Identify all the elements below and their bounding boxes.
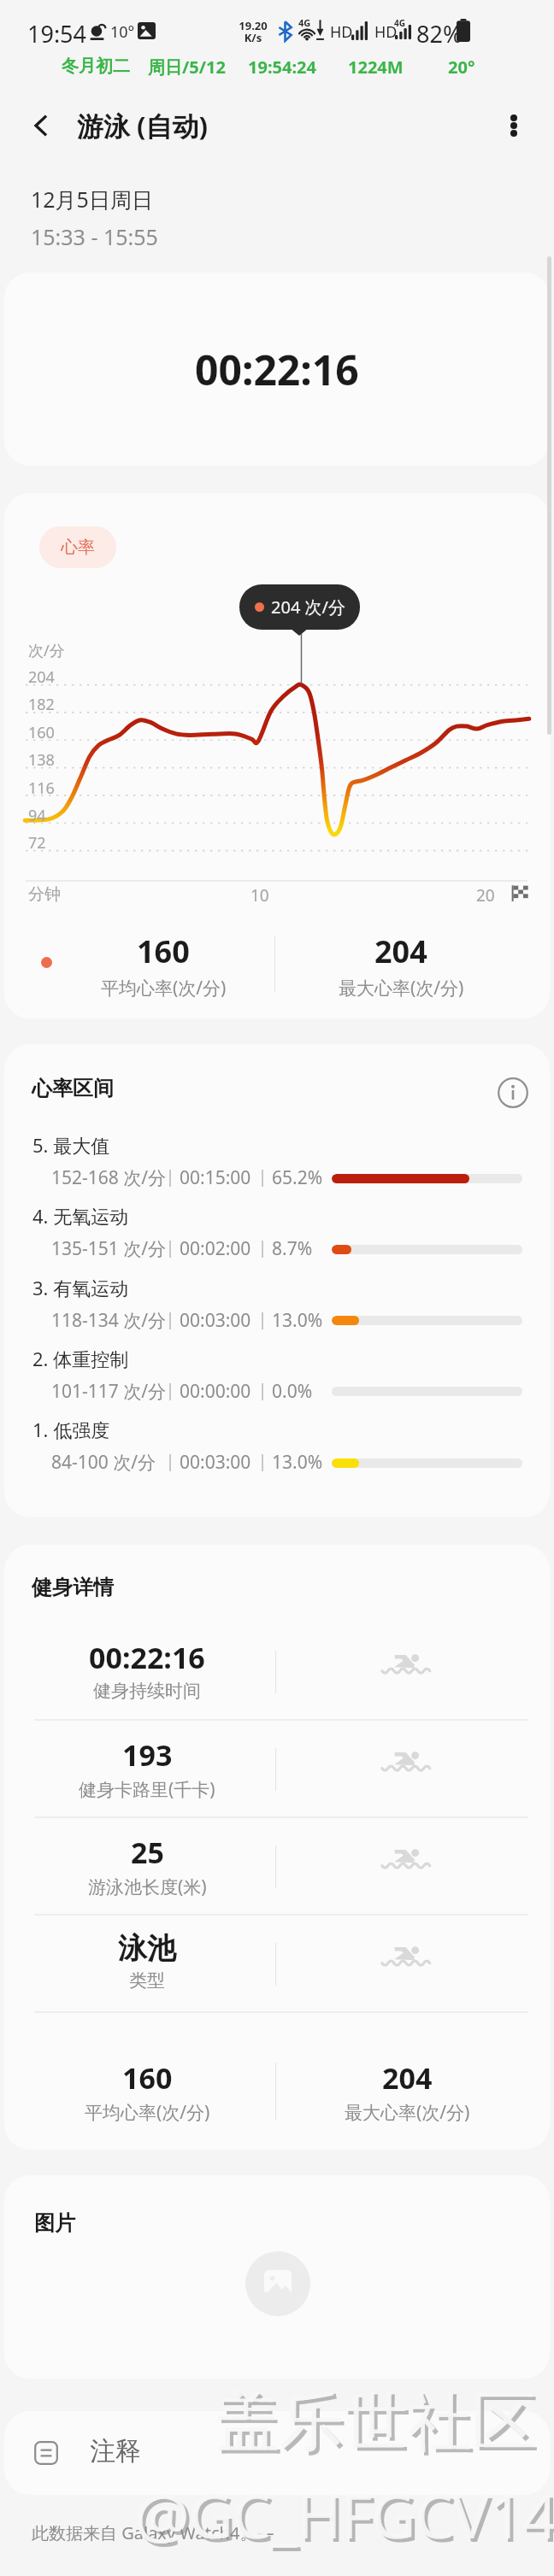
button[interactable]: 注释 xyxy=(4,2411,550,2495)
staticText: 周日/5/12 xyxy=(148,56,226,79)
staticText: 00:03:00 xyxy=(180,1308,251,1333)
staticText: 160 xyxy=(28,722,55,743)
staticText: 00:00:00 xyxy=(180,1379,251,1404)
staticText: 135-151 次/分 xyxy=(51,1236,167,1261)
staticText: 3. 有氧运动 xyxy=(32,1275,129,1300)
staticText: 00:22:16 xyxy=(89,1638,205,1677)
staticText: 健身卡路里(千卡) xyxy=(79,1777,215,1802)
staticText: 5. 最大值 xyxy=(32,1132,110,1158)
staticText: 138 xyxy=(28,749,55,771)
staticText: 00:02:00 xyxy=(180,1236,251,1261)
staticText: 游泳 (自动) xyxy=(77,108,209,144)
staticText: 健身详情 xyxy=(32,1575,114,1600)
staticText: 类型 xyxy=(129,1969,165,1992)
button[interactable]: Info xyxy=(495,1075,531,1111)
staticText: HD xyxy=(330,21,353,43)
staticText: 118-134 次/分 xyxy=(51,1308,167,1333)
staticText: 20 xyxy=(476,884,495,907)
staticText: 1224M xyxy=(348,56,404,79)
staticText: 10 xyxy=(250,884,269,907)
staticText: 13.0% xyxy=(272,1450,323,1475)
staticText: 00:22:16 xyxy=(195,342,359,397)
staticText: 160 xyxy=(122,2058,173,2098)
staticText: 冬月初二 xyxy=(62,56,130,77)
staticText: 健身持续时间 xyxy=(93,1680,201,1702)
staticText: 4G xyxy=(298,16,311,29)
staticText: 盖乐世社区 xyxy=(215,2382,536,2462)
staticText: 13.0% xyxy=(272,1308,323,1333)
staticText: 00:03:00 xyxy=(180,1450,251,1475)
staticText: 4G xyxy=(394,17,405,29)
staticText: 82% xyxy=(416,18,463,50)
staticText: 心率区间 xyxy=(32,1076,114,1101)
staticText: 25 xyxy=(131,1833,164,1872)
staticText: 65.2% xyxy=(272,1165,323,1190)
staticText: 94 xyxy=(28,805,46,826)
staticText: 分钟 xyxy=(28,884,61,905)
staticText: 101-117 次/分 xyxy=(51,1379,167,1404)
staticText: 204 次/分 xyxy=(271,596,345,619)
staticText: 116 xyxy=(28,777,55,799)
staticText: 20° xyxy=(448,56,475,79)
staticText: 1. 低强度 xyxy=(32,1417,110,1442)
button[interactable]: Back xyxy=(21,105,62,146)
staticText: 193 xyxy=(122,1735,173,1775)
staticText: 泳池 xyxy=(118,1930,176,1967)
staticText: 2. 体重控制 xyxy=(32,1346,129,1371)
staticText: 最大心率(次/分) xyxy=(339,976,464,1000)
staticText: 160 xyxy=(137,930,190,972)
staticText: 204 xyxy=(28,666,55,688)
staticText: 182 xyxy=(28,694,55,715)
staticText: 盖乐世社区 xyxy=(219,2385,539,2466)
button[interactable]: Add photo xyxy=(245,2251,310,2316)
button[interactable]: More options xyxy=(492,104,535,147)
staticText: 次/分 xyxy=(28,640,65,661)
staticText: 0.0% xyxy=(272,1379,313,1404)
staticText: 平均心率(次/分) xyxy=(101,976,227,1000)
staticText: 12月5日周日 xyxy=(31,185,153,214)
staticText: 平均心率(次/分) xyxy=(85,2100,210,2125)
staticText: HD xyxy=(374,21,398,43)
staticText: 152-168 次/分 xyxy=(51,1165,167,1190)
staticText: @GC_HFGCV14 xyxy=(134,2473,554,2556)
staticText: 00:15:00 xyxy=(180,1165,251,1190)
staticText: 15:33 - 15:55 xyxy=(31,222,158,251)
staticText: 84-100 次/分 xyxy=(51,1450,156,1475)
staticText: 19:54 xyxy=(27,18,87,50)
staticText: @GC_HFGCV14 xyxy=(138,2476,554,2560)
button[interactable]: 心率 xyxy=(39,526,116,568)
staticText: 最大心率(次/分) xyxy=(345,2100,470,2125)
staticText: 204 xyxy=(382,2058,433,2098)
staticText: 心率 xyxy=(61,537,95,558)
staticText: 4. 无氧运动 xyxy=(32,1203,129,1229)
staticText: 19.20 K/s xyxy=(239,18,268,45)
staticText: 72 xyxy=(28,832,46,854)
staticText: 此数据来自 Galaxy Watch4。— xyxy=(32,2521,274,2544)
staticText: 注释 xyxy=(90,2435,141,2467)
staticText: 游泳池长度(米) xyxy=(88,1875,207,1899)
staticText: 图片 xyxy=(34,2210,75,2236)
staticText: 204 xyxy=(374,930,427,972)
staticText: 19:54:24 xyxy=(248,56,316,79)
staticText: 8.7% xyxy=(272,1236,313,1261)
staticText: 10° xyxy=(110,21,135,43)
